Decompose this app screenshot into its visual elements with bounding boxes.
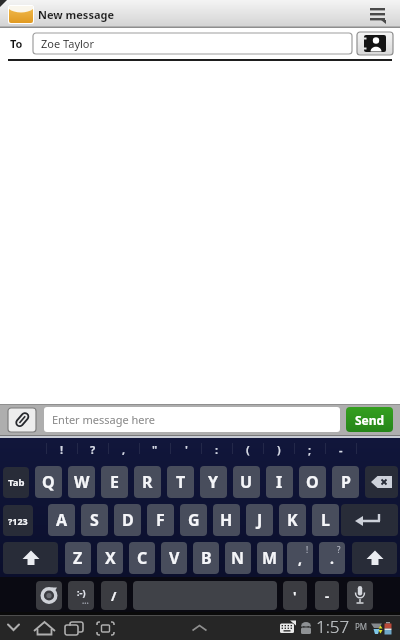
staticText: ; — [308, 442, 312, 457]
button[interactable]: " — [147, 440, 163, 458]
button[interactable]: ( — [240, 440, 256, 458]
staticText: K — [287, 509, 298, 531]
staticText: S — [90, 509, 99, 531]
button[interactable]: ? — [85, 440, 101, 458]
staticText: I — [276, 471, 283, 493]
staticText: V — [169, 547, 180, 569]
button[interactable]: Y — [200, 466, 227, 498]
staticText: ! — [306, 544, 309, 553]
button[interactable] — [352, 542, 397, 574]
button[interactable]: T — [167, 466, 194, 498]
button[interactable]: D — [114, 504, 141, 536]
staticText: J — [257, 509, 263, 531]
staticText: E — [110, 471, 119, 493]
staticText: ' — [293, 587, 297, 605]
button[interactable]: S — [81, 504, 108, 536]
staticText: - — [339, 442, 343, 457]
button[interactable]: / — [101, 581, 127, 610]
button[interactable]: J — [246, 504, 273, 536]
staticText: :-) — [77, 586, 86, 598]
button[interactable]: . — [319, 542, 345, 574]
button[interactable]: :-) — [68, 581, 94, 610]
button[interactable] — [341, 504, 398, 536]
button[interactable] — [362, 0, 400, 28]
button[interactable]: F — [147, 504, 174, 536]
button[interactable] — [93, 618, 117, 636]
staticText: G — [188, 509, 200, 531]
button[interactable]: ' — [178, 440, 194, 458]
button[interactable] — [33, 33, 352, 54]
staticText: N — [231, 547, 245, 569]
staticText: / — [111, 587, 117, 605]
staticText: ? — [337, 544, 341, 553]
staticText: , — [298, 549, 302, 568]
staticText: ! — [60, 442, 64, 457]
staticText: Z — [73, 547, 83, 569]
button[interactable]: G — [180, 504, 207, 536]
staticText: Enter message here — [52, 412, 156, 427]
button[interactable]: ) — [271, 440, 287, 458]
button[interactable] — [2, 618, 28, 636]
staticText: To — [10, 36, 23, 51]
button[interactable]: H — [213, 504, 240, 536]
staticText: C — [137, 547, 148, 569]
button[interactable]: B — [193, 542, 219, 574]
button[interactable]: - — [333, 440, 349, 458]
button[interactable]: Send — [346, 407, 393, 432]
button[interactable] — [347, 581, 373, 610]
staticText: D — [122, 509, 134, 531]
button[interactable] — [44, 407, 340, 432]
staticText: W — [74, 471, 90, 493]
staticText: O — [306, 471, 319, 493]
button[interactable]: I — [266, 466, 293, 498]
staticText: U — [240, 471, 253, 493]
button[interactable]: ' — [283, 581, 307, 610]
button[interactable]: ?123 — [3, 505, 33, 536]
button[interactable]: ; — [302, 440, 318, 458]
button[interactable]: Tab — [3, 467, 29, 498]
button[interactable] — [357, 32, 393, 55]
staticText: ? — [90, 442, 96, 457]
button[interactable]: P — [332, 466, 359, 498]
button[interactable]: U — [233, 466, 260, 498]
button[interactable]: R — [134, 466, 161, 498]
button[interactable]: K — [279, 504, 306, 536]
staticText: T — [176, 471, 186, 493]
button[interactable]: - — [315, 581, 339, 610]
button[interactable]: A — [48, 504, 75, 536]
staticText: H — [220, 509, 233, 531]
button[interactable]: Q — [35, 466, 62, 498]
button[interactable]: N — [225, 542, 251, 574]
staticText: R — [142, 471, 153, 493]
staticText: X — [105, 547, 116, 569]
button[interactable]: E — [101, 466, 128, 498]
button[interactable]: V — [161, 542, 187, 574]
button[interactable] — [36, 581, 62, 610]
button[interactable]: , — [287, 542, 313, 574]
button[interactable] — [0, 0, 36, 28]
button[interactable] — [276, 618, 298, 636]
button[interactable] — [365, 466, 398, 498]
button[interactable] — [3, 542, 58, 574]
staticText: - — [325, 587, 330, 605]
button[interactable] — [8, 408, 36, 432]
staticText: P — [341, 471, 351, 493]
button[interactable]: , — [116, 440, 132, 458]
staticText: : — [215, 442, 219, 457]
button[interactable] — [62, 618, 86, 636]
button[interactable]: Z — [65, 542, 91, 574]
button[interactable]: X — [97, 542, 123, 574]
staticText: , — [122, 442, 126, 457]
button[interactable]: : — [209, 440, 225, 458]
button[interactable]: W — [68, 466, 95, 498]
button[interactable]: L — [312, 504, 339, 536]
button[interactable]: M — [257, 542, 283, 574]
button[interactable]: C — [129, 542, 155, 574]
staticText: Zoe Taylor — [41, 36, 95, 51]
staticText: ?123 — [8, 515, 28, 527]
staticText: . — [330, 549, 334, 568]
button[interactable]: ! — [54, 440, 70, 458]
button[interactable] — [32, 618, 58, 636]
button[interactable]: O — [299, 466, 326, 498]
